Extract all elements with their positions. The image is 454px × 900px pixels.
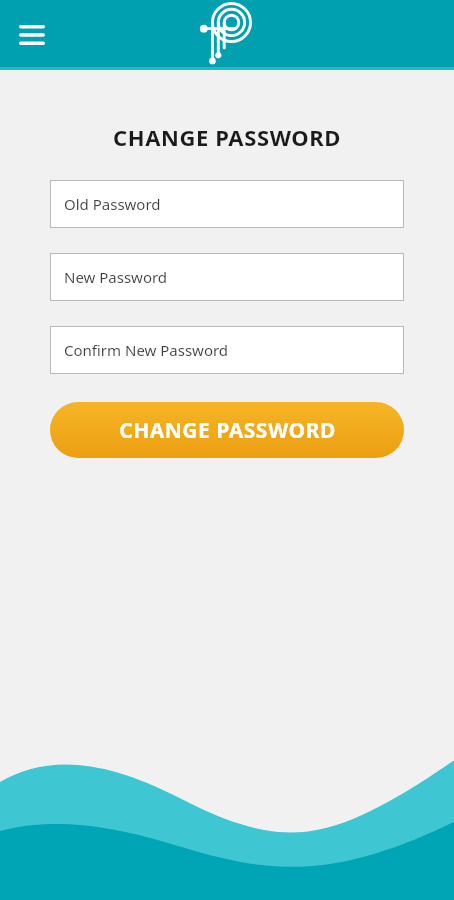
button[interactable]: Old Password <box>50 180 404 228</box>
button[interactable]: CHANGE PASSWORD <box>50 402 404 458</box>
button[interactable]: Confirm New Password <box>50 326 404 374</box>
button[interactable]: New Password <box>50 253 404 301</box>
button[interactable]: Open navigation menu <box>10 13 54 57</box>
staticText: Old Password <box>64 194 161 214</box>
staticText: CHANGE PASSWORD <box>119 416 336 445</box>
staticText: CHANGE PASSWORD <box>0 122 454 152</box>
staticText: Confirm New Password <box>64 340 229 360</box>
staticText: New Password <box>64 267 168 287</box>
